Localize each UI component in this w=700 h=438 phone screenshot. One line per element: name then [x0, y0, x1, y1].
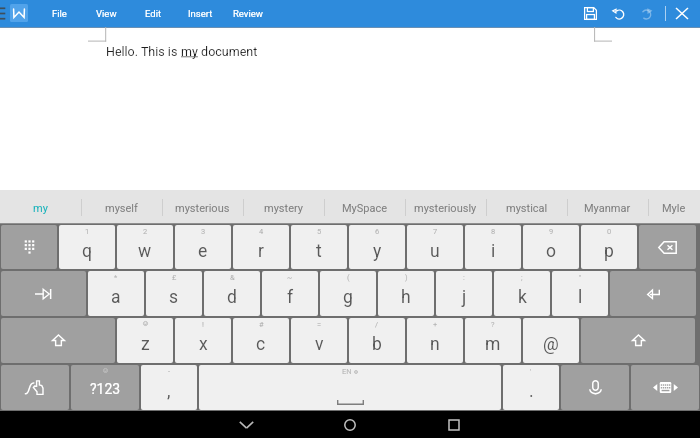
button[interactable]: @	[523, 318, 579, 363]
button[interactable]: Close	[668, 0, 696, 27]
button[interactable]: £	[146, 271, 202, 316]
button[interactable]	[1, 271, 86, 316]
button[interactable]: z	[117, 318, 173, 363]
staticText: )	[405, 273, 408, 282]
button[interactable]: File	[36, 0, 83, 27]
button[interactable]: "	[552, 271, 608, 316]
staticText: "	[579, 273, 582, 282]
button[interactable]: 6	[349, 225, 405, 269]
button[interactable]: 2	[117, 225, 173, 269]
button[interactable]: ?123	[71, 365, 139, 410]
button[interactable]: 0	[581, 225, 637, 269]
button[interactable]: Redo	[632, 0, 659, 27]
button[interactable]	[639, 225, 696, 269]
button[interactable]: -	[141, 365, 197, 410]
button[interactable]: Insert	[177, 0, 224, 27]
button[interactable]: Myanmar	[567, 190, 648, 224]
staticText: 7	[433, 227, 438, 236]
staticText: (	[347, 273, 350, 282]
staticText: w	[138, 241, 152, 262]
button[interactable]: my	[0, 190, 81, 224]
staticText: ?	[491, 320, 495, 329]
button[interactable]: Word app	[10, 4, 28, 22]
staticText: r	[258, 241, 264, 262]
button[interactable]	[631, 365, 699, 410]
button[interactable]: #	[233, 318, 289, 363]
button[interactable]: &	[204, 271, 260, 316]
staticText: y	[373, 241, 382, 262]
button[interactable]: Back	[214, 411, 278, 438]
button[interactable]: Save	[577, 0, 604, 27]
staticText: MySpace	[342, 202, 388, 215]
staticText: Myanmar	[584, 202, 631, 215]
button[interactable]: 1	[59, 225, 115, 269]
button[interactable]: Home	[318, 411, 382, 438]
staticText: 4	[259, 227, 264, 236]
staticText: 5	[317, 227, 322, 236]
button[interactable]: myself	[81, 190, 162, 224]
staticText: j	[462, 287, 467, 308]
button[interactable]: MySpace	[324, 190, 405, 224]
staticText: 2	[143, 227, 148, 236]
button[interactable]: (	[320, 271, 376, 316]
staticText: ?123	[90, 381, 121, 397]
staticText: 8	[491, 227, 496, 236]
button[interactable]: Edit	[130, 0, 177, 27]
button[interactable]: =	[291, 318, 347, 363]
button[interactable]	[1, 225, 57, 269]
staticText: &	[230, 273, 235, 282]
button[interactable]: '	[503, 365, 559, 410]
button[interactable]: mysterious	[162, 190, 243, 224]
button[interactable]: Menu	[0, 0, 9, 27]
staticText: mystery	[264, 202, 303, 215]
button[interactable]: 3	[175, 225, 231, 269]
button[interactable]: mystery	[243, 190, 324, 224]
staticText: l	[578, 287, 583, 308]
button[interactable]: Myle	[648, 190, 700, 224]
button[interactable]	[581, 318, 695, 363]
staticText: !	[202, 320, 204, 329]
button[interactable]: 4	[233, 225, 289, 269]
button[interactable]: EN	[199, 365, 501, 410]
staticText: *	[114, 273, 118, 282]
button[interactable]	[1, 318, 115, 363]
button[interactable]: ~	[262, 271, 318, 316]
button[interactable]: 7	[407, 225, 463, 269]
button[interactable]: mystical	[486, 190, 567, 224]
staticText: ;	[521, 273, 523, 282]
staticText: mystical	[506, 202, 548, 215]
staticText: ~	[287, 273, 293, 282]
staticText: 9	[549, 227, 554, 236]
staticText: myself	[105, 202, 138, 215]
staticText: Myle	[662, 202, 686, 215]
staticText: Hello. This is	[106, 44, 181, 59]
button[interactable]: Review	[224, 0, 271, 27]
staticText: p	[604, 241, 614, 262]
staticText: -	[168, 367, 171, 376]
button[interactable]: /	[349, 318, 405, 363]
staticText: Edit	[145, 8, 162, 19]
button[interactable]: mysteriously	[405, 190, 486, 224]
staticText: View	[96, 8, 117, 19]
button[interactable]	[1, 365, 69, 410]
staticText: s	[169, 287, 179, 308]
staticText: k	[518, 287, 527, 308]
button[interactable]: :	[436, 271, 492, 316]
button[interactable]: 9	[523, 225, 579, 269]
button[interactable]: ;	[494, 271, 550, 316]
staticText: File	[52, 8, 67, 19]
button[interactable]: ?	[465, 318, 521, 363]
button[interactable]: View	[83, 0, 130, 27]
button[interactable]: +	[407, 318, 463, 363]
button[interactable]: 5	[291, 225, 347, 269]
staticText: z	[141, 334, 150, 355]
button[interactable]	[610, 271, 696, 316]
button[interactable]: Recents	[422, 411, 486, 438]
button[interactable]	[561, 365, 629, 410]
button[interactable]: 8	[465, 225, 521, 269]
button[interactable]: *	[88, 271, 144, 316]
button[interactable]: )	[378, 271, 434, 316]
staticText: u	[430, 241, 440, 262]
button[interactable]: Undo	[605, 0, 632, 27]
button[interactable]: !	[175, 318, 231, 363]
